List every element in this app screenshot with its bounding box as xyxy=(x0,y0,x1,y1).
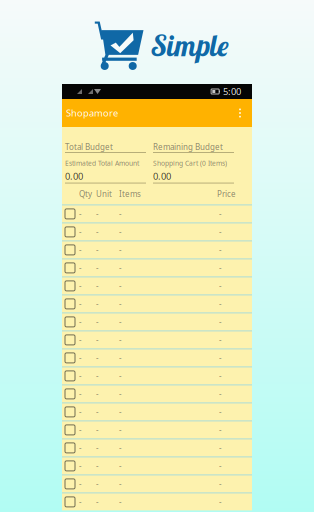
staticText: - xyxy=(79,479,82,489)
staticText: - xyxy=(96,461,99,471)
staticText: - xyxy=(96,263,99,273)
button[interactable]: - xyxy=(62,222,252,240)
staticText: - xyxy=(219,443,222,453)
staticText: - xyxy=(96,245,99,255)
staticText: - xyxy=(119,443,122,453)
button[interactable]: - xyxy=(62,402,252,420)
staticText: - xyxy=(96,371,99,381)
staticText: - xyxy=(119,227,122,237)
staticText: - xyxy=(96,335,99,345)
staticText: Shopamore xyxy=(66,107,118,119)
staticText: - xyxy=(119,245,122,255)
staticText: Unit xyxy=(96,189,112,199)
staticText: - xyxy=(79,209,82,219)
staticText: - xyxy=(79,389,82,399)
staticText: 5:00 xyxy=(223,85,241,98)
staticText: - xyxy=(96,317,99,327)
staticText: Estimated Total Amount xyxy=(65,159,139,168)
staticText: Price xyxy=(217,189,236,199)
staticText: - xyxy=(119,497,122,507)
staticText: - xyxy=(79,407,82,417)
staticText: - xyxy=(79,263,82,273)
staticText: - xyxy=(96,443,99,453)
button[interactable]: - xyxy=(62,312,252,330)
staticText: - xyxy=(79,227,82,237)
button[interactable]: - xyxy=(62,204,252,222)
staticText: - xyxy=(96,227,99,237)
staticText: - xyxy=(219,227,222,237)
staticText: - xyxy=(219,299,222,309)
staticText: - xyxy=(219,425,222,435)
button[interactable]: - xyxy=(62,474,252,492)
staticText: 0.00 xyxy=(153,170,171,182)
staticText: - xyxy=(79,335,82,345)
staticText: - xyxy=(219,281,222,291)
staticText: - xyxy=(79,497,82,507)
button[interactable]: - xyxy=(62,366,252,384)
staticText: - xyxy=(219,335,222,345)
staticText: Simple xyxy=(151,28,228,63)
staticText: - xyxy=(219,479,222,489)
staticText: - xyxy=(219,353,222,363)
staticText: - xyxy=(96,497,99,507)
staticText: - xyxy=(119,353,122,363)
staticText: - xyxy=(79,299,82,309)
staticText: - xyxy=(96,209,99,219)
staticText: Shopping Cart (0 Items) xyxy=(153,159,227,168)
staticText: 0.00 xyxy=(65,170,83,182)
staticText: - xyxy=(79,245,82,255)
staticText: - xyxy=(219,497,222,507)
staticText: - xyxy=(96,425,99,435)
staticText: - xyxy=(96,407,99,417)
staticText: - xyxy=(79,443,82,453)
button[interactable]: - xyxy=(62,330,252,348)
staticText: Total Budget xyxy=(65,142,113,152)
staticText: - xyxy=(119,371,122,381)
staticText: - xyxy=(79,353,82,363)
staticText: - xyxy=(79,461,82,471)
staticText: - xyxy=(119,209,122,219)
staticText: - xyxy=(219,371,222,381)
staticText: - xyxy=(119,389,122,399)
staticText: - xyxy=(119,335,122,345)
staticText: - xyxy=(119,281,122,291)
button[interactable]: - xyxy=(62,492,252,510)
staticText: - xyxy=(96,299,99,309)
button[interactable]: - xyxy=(62,240,252,258)
staticText: Remaining Budget xyxy=(153,142,223,152)
staticText: - xyxy=(219,407,222,417)
staticText: - xyxy=(119,317,122,327)
staticText: - xyxy=(219,389,222,399)
button[interactable]: - xyxy=(62,438,252,456)
staticText: - xyxy=(119,461,122,471)
staticText: - xyxy=(119,263,122,273)
button[interactable]: - xyxy=(62,420,252,438)
staticText: - xyxy=(219,263,222,273)
button[interactable]: - xyxy=(62,276,252,294)
staticText: - xyxy=(219,317,222,327)
button[interactable]: - xyxy=(62,348,252,366)
staticText: - xyxy=(219,461,222,471)
staticText: - xyxy=(79,425,82,435)
staticText: - xyxy=(79,281,82,291)
staticText: - xyxy=(79,317,82,327)
button[interactable]: More options xyxy=(232,99,248,127)
button[interactable]: - xyxy=(62,456,252,474)
staticText: - xyxy=(96,353,99,363)
staticText: - xyxy=(219,209,222,219)
staticText: - xyxy=(96,479,99,489)
button[interactable]: - xyxy=(62,384,252,402)
button[interactable]: - xyxy=(62,294,252,312)
button[interactable]: - xyxy=(62,258,252,276)
staticText: Qty xyxy=(79,189,92,199)
staticText: - xyxy=(119,479,122,489)
staticText: - xyxy=(219,245,222,255)
staticText: - xyxy=(96,389,99,399)
staticText: Items xyxy=(119,189,141,199)
staticText: - xyxy=(96,281,99,291)
staticText: - xyxy=(119,407,122,417)
staticText: - xyxy=(119,299,122,309)
staticText: - xyxy=(79,371,82,381)
staticText: - xyxy=(119,425,122,435)
